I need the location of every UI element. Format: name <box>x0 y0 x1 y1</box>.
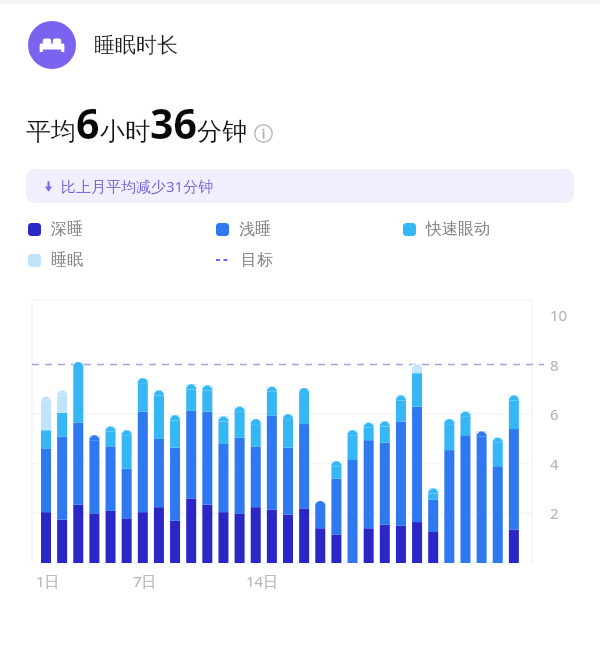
button[interactable]: 目标 <box>216 250 273 270</box>
staticText: 36 <box>150 95 197 151</box>
staticText: 睡眠 <box>51 250 83 270</box>
button[interactable]: 睡眠时长 <box>0 19 600 71</box>
staticText: 7日 <box>133 571 157 591</box>
staticText: 4 <box>550 454 559 474</box>
staticText: 快速眼动 <box>426 219 490 239</box>
staticText: 2 <box>550 503 559 523</box>
staticText: 浅睡 <box>239 219 271 239</box>
staticText: 6 <box>76 95 100 151</box>
staticText: 小时 <box>100 116 150 147</box>
other: 睡眠时长 <box>28 21 76 69</box>
staticText: 深睡 <box>51 219 83 239</box>
staticText: 10 <box>550 305 568 325</box>
button[interactable]: 比上月平均减少31分钟 <box>26 169 574 203</box>
button[interactable]: 说明 <box>254 124 273 143</box>
staticText: 平均 <box>26 116 76 147</box>
staticText: 睡眠时长 <box>94 32 178 58</box>
staticText: 6 <box>550 404 559 424</box>
button[interactable]: 深睡 <box>28 219 83 239</box>
staticText: 目标 <box>241 250 273 270</box>
staticText: 分钟 <box>197 116 247 147</box>
button[interactable]: 快速眼动 <box>403 219 490 239</box>
button[interactable]: 浅睡 <box>216 219 271 239</box>
button[interactable]: 睡眠 <box>28 250 83 270</box>
staticText: 8 <box>550 355 559 375</box>
staticText: 14日 <box>246 571 279 591</box>
staticText: 比上月平均减少31分钟 <box>61 176 214 196</box>
staticText: 1日 <box>36 571 60 591</box>
